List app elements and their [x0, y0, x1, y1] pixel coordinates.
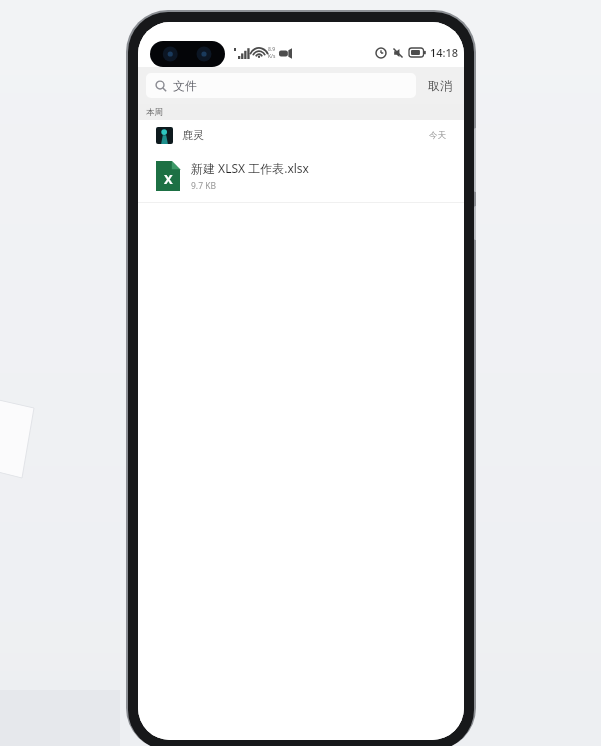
- other: Excel file: [156, 161, 180, 191]
- staticText: 本周: [146, 107, 163, 118]
- button[interactable]: Excel file: [138, 150, 464, 202]
- staticText: 鹿灵: [182, 128, 204, 142]
- staticText: 8.9: [268, 46, 276, 53]
- staticText: 新建 XLSX 工作表.xlsx: [191, 160, 309, 176]
- button[interactable]: 取消: [416, 67, 464, 104]
- button[interactable]: 鹿灵: [138, 120, 464, 150]
- staticText: X: [164, 170, 173, 188]
- staticText: 9.7 KB: [191, 180, 216, 192]
- button[interactable]: 文件: [146, 73, 416, 98]
- staticText: 文件: [173, 78, 197, 93]
- staticText: 14:18: [430, 45, 459, 60]
- staticText: 取消: [428, 78, 452, 93]
- staticText: 今天: [429, 130, 446, 141]
- staticText: K/s: [268, 53, 276, 60]
